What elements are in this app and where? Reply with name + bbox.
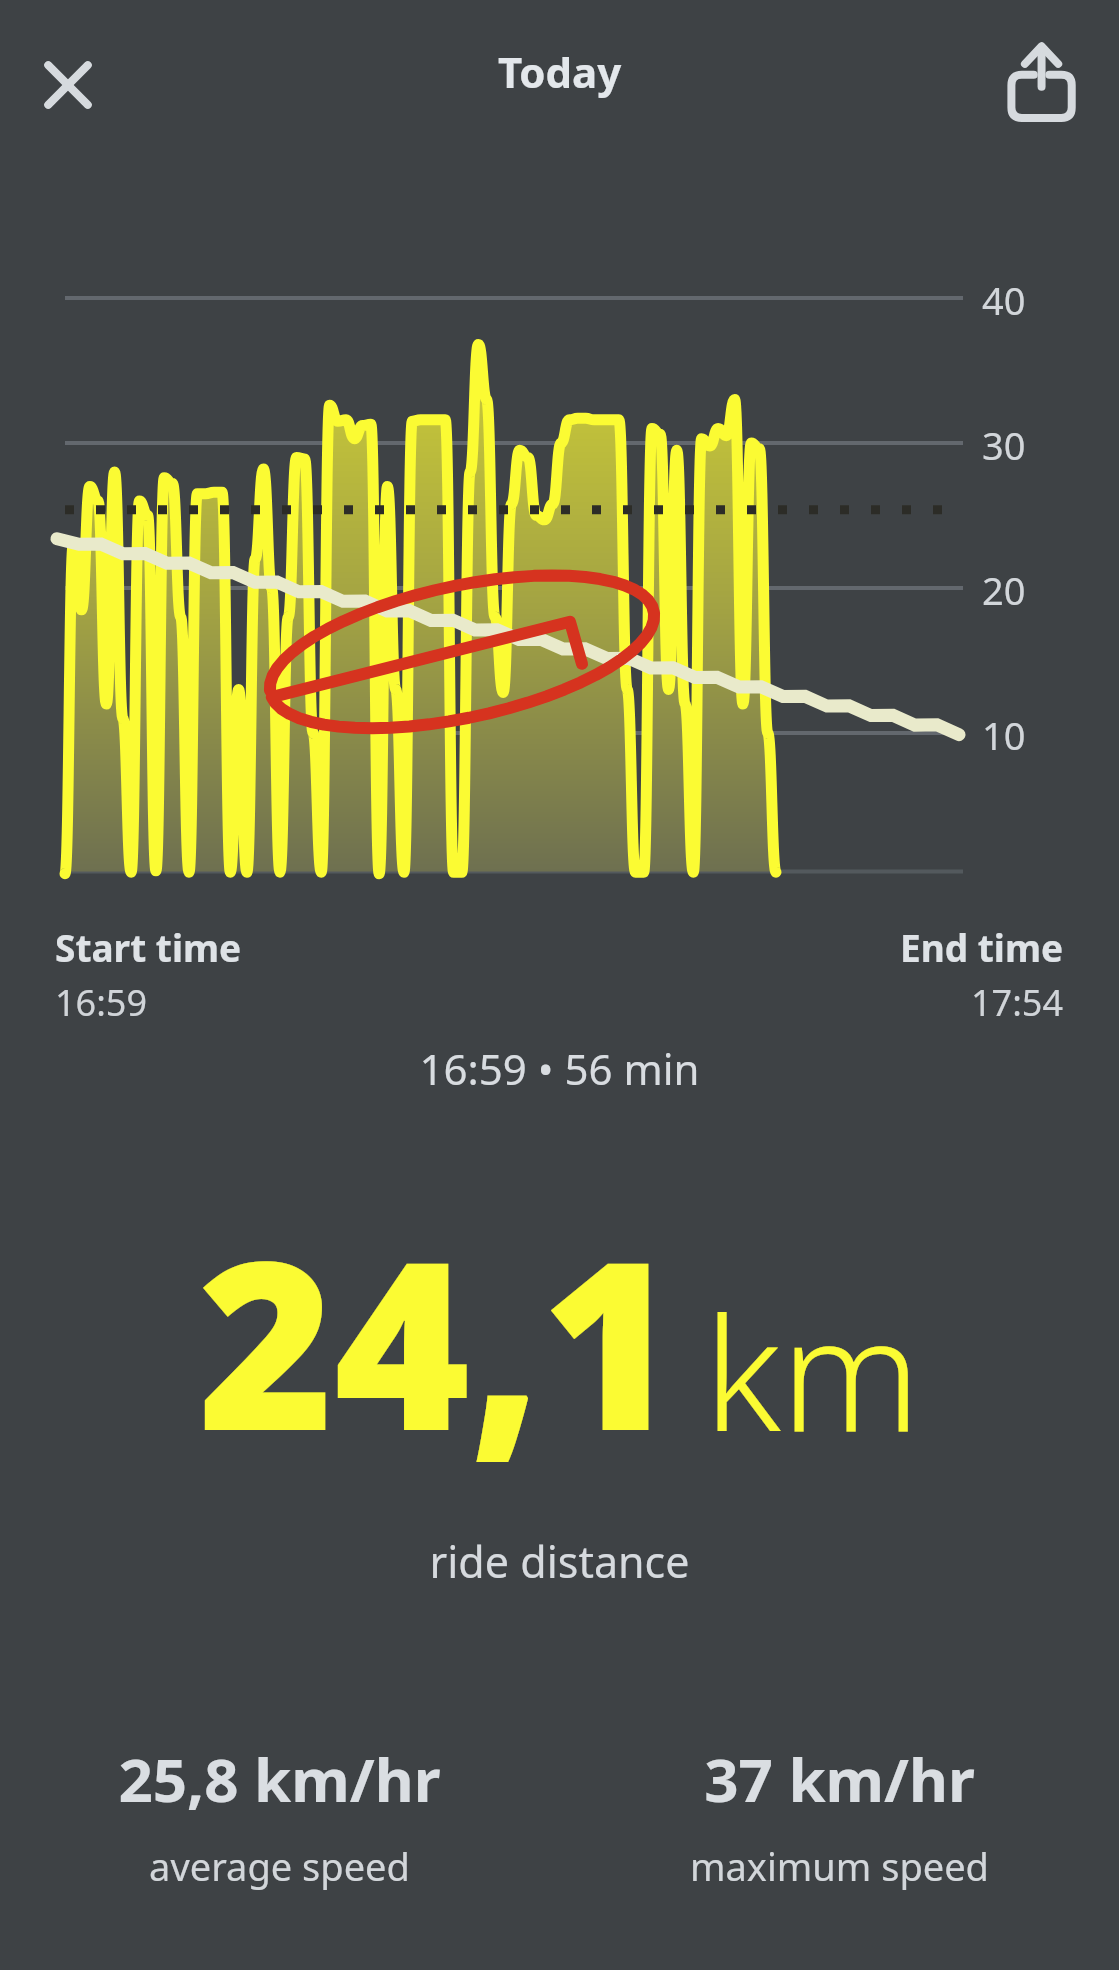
staticText: 25,8 km/hr — [118, 1738, 441, 1820]
staticText: 20 — [982, 564, 1026, 616]
staticText: 16:59 — [55, 978, 148, 1027]
staticText: 37 km/hr — [704, 1738, 975, 1820]
staticText: ride distance — [0, 1532, 1119, 1591]
staticText: 10 — [982, 709, 1026, 761]
staticText: 30 — [982, 419, 1026, 471]
staticText: Today — [0, 43, 1119, 100]
button[interactable]: Close — [24, 41, 112, 129]
staticText: average speed — [149, 1840, 410, 1892]
staticText: 40 — [982, 274, 1026, 326]
staticText: End time — [900, 922, 1064, 972]
staticText: Start time — [55, 922, 242, 972]
staticText: maximum speed — [690, 1840, 989, 1892]
button[interactable]: Share — [988, 28, 1092, 132]
staticText: 17:54 — [971, 978, 1064, 1027]
staticText: 24,1 — [198, 1182, 678, 1498]
staticText: 16:59 • 56 min — [0, 1040, 1119, 1097]
staticText: km — [704, 1264, 921, 1476]
